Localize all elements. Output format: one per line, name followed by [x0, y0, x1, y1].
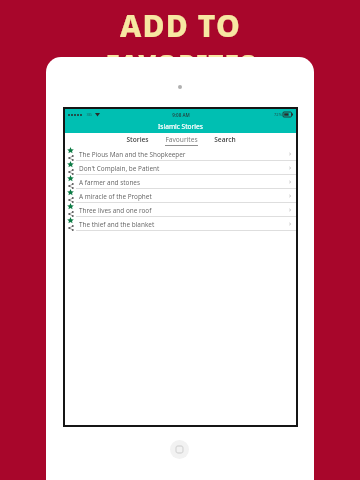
button[interactable]: Favourite: [65, 189, 296, 203]
button[interactable]: Favourites: [163, 135, 200, 146]
button[interactable]: Stories: [124, 135, 151, 146]
button[interactable]: Share: [68, 211, 74, 217]
button[interactable]: Home: [170, 440, 189, 459]
button[interactable]: Share: [68, 155, 74, 161]
staticText: A farmer and stones: [79, 178, 141, 187]
staticText: Don't Complain, be Patient: [79, 164, 160, 173]
button[interactable]: Share: [68, 197, 74, 203]
staticText: A miracle of the Prophet: [79, 192, 152, 201]
staticText: 3G: [86, 112, 92, 117]
staticText: Islamic Stories: [158, 122, 203, 131]
button[interactable]: Favourite: [67, 147, 74, 154]
button[interactable]: Favourite: [67, 203, 74, 210]
staticText: 9:08 AM: [172, 112, 190, 118]
staticText: The Pious Man and the Shopkeeper: [79, 150, 186, 159]
staticText: The thief and the blanket: [79, 220, 155, 229]
button[interactable]: Favourite: [65, 217, 296, 231]
staticText: ADD TO: [120, 5, 241, 46]
button[interactable]: Islamic Stories: [65, 120, 296, 133]
button[interactable]: Favourite: [65, 161, 296, 175]
staticText: Search: [214, 135, 236, 144]
button[interactable]: Favourite: [67, 161, 74, 168]
button[interactable]: Favourite: [67, 175, 74, 182]
button[interactable]: Favourite: [65, 147, 296, 161]
button[interactable]: Favourite: [67, 189, 74, 196]
button[interactable]: Favourite: [65, 203, 296, 217]
button[interactable]: Favourite: [65, 175, 296, 189]
staticText: Stories: [126, 135, 149, 144]
button[interactable]: Search: [212, 135, 238, 146]
button[interactable]: Share: [68, 169, 74, 175]
button[interactable]: Share: [68, 225, 74, 231]
staticText: Favourites: [165, 135, 198, 144]
staticText: FAVORITES: [105, 46, 256, 81]
button[interactable]: Favourite: [67, 217, 74, 224]
button[interactable]: Share: [68, 183, 74, 189]
staticText: Three lives and one roof: [79, 206, 152, 215]
staticText: 72%: [274, 112, 282, 117]
